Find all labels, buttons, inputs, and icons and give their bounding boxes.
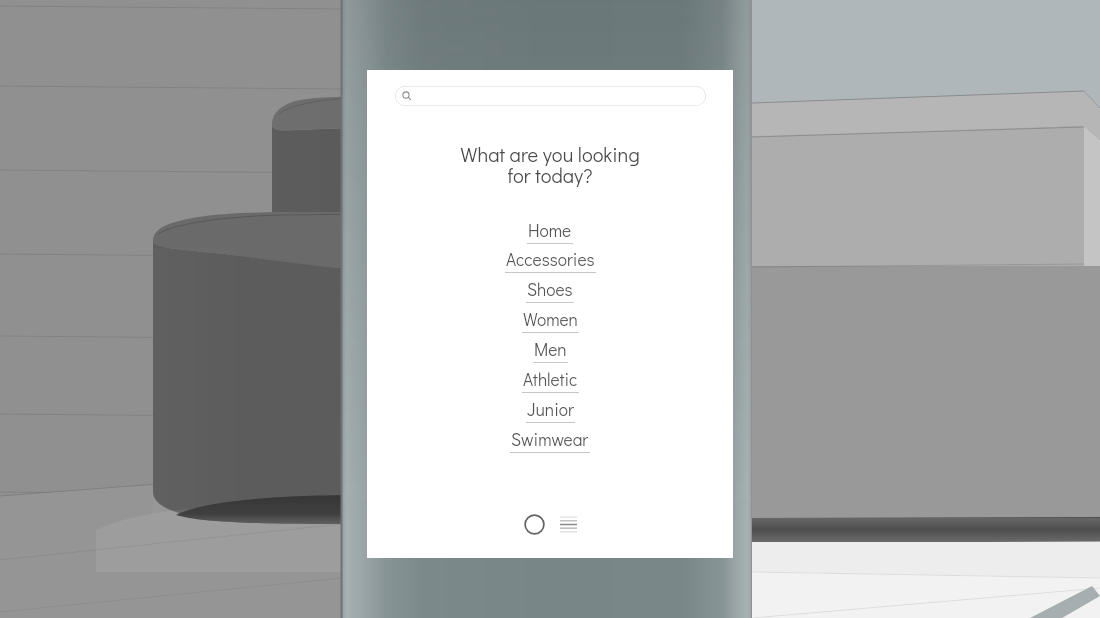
button[interactable]: Accessories <box>505 248 596 273</box>
staticText: Accessories <box>506 248 595 271</box>
staticText: Men <box>534 338 567 361</box>
button[interactable]: Menu <box>553 509 583 539</box>
staticText: Shoes <box>527 278 573 301</box>
button[interactable]: Swimwear <box>510 428 590 453</box>
button[interactable]: Junior <box>526 398 575 423</box>
staticText: Women <box>523 308 578 331</box>
staticText: Junior <box>527 398 574 421</box>
staticText: Athletic <box>523 368 578 391</box>
button[interactable]: Women <box>522 308 579 333</box>
staticText: Home <box>528 219 572 242</box>
staticText: Swimwear <box>511 428 589 451</box>
staticText: What are you looking for today? <box>460 141 640 189</box>
button[interactable]: Shoes <box>526 278 574 303</box>
button[interactable]: Search <box>395 86 706 106</box>
button[interactable]: Men <box>533 338 568 363</box>
button[interactable]: Home <box>527 219 573 244</box>
button[interactable]: Athletic <box>522 368 579 393</box>
button[interactable]: Profile <box>519 509 549 539</box>
